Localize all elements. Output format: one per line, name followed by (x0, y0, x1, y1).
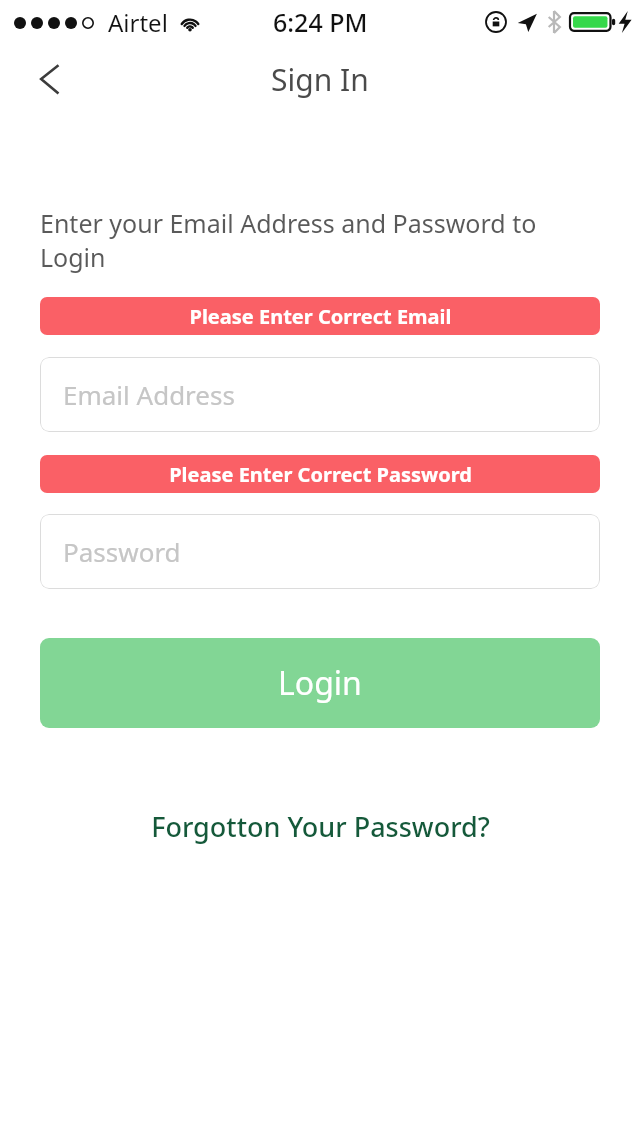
button[interactable]: Please Enter Correct Email (40, 297, 600, 335)
staticText: Forgotton Your Password? (151, 808, 490, 845)
button[interactable]: Login (40, 638, 600, 728)
staticText: Password (63, 534, 181, 569)
button[interactable]: Forgotton Your Password? (0, 802, 640, 850)
button[interactable]: Back (22, 51, 78, 107)
staticText: Login (278, 661, 362, 705)
staticText: Please Enter Correct Email (189, 303, 452, 330)
staticText: 6:24 PM (273, 5, 368, 39)
button[interactable]: Please Enter Correct Password (40, 455, 600, 493)
staticText: Please Enter Correct Password (169, 461, 472, 488)
staticText: Sign In (271, 59, 369, 100)
button[interactable]: Password (40, 514, 600, 589)
button[interactable]: Email Address (40, 357, 600, 432)
staticText: Enter your Email Address and Password to… (40, 206, 570, 274)
staticText: Email Address (63, 377, 235, 412)
staticText: Airtel (108, 6, 168, 39)
